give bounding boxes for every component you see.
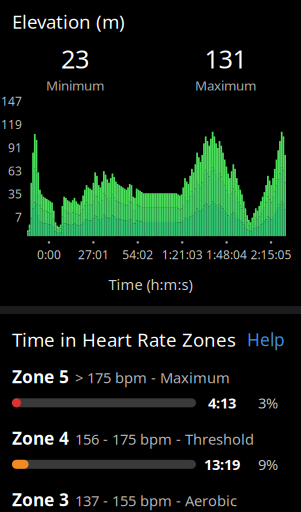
staticText: 27:01 xyxy=(78,247,109,262)
staticText: 156 - 175 bpm - Threshold xyxy=(75,429,254,449)
staticText: Zone 5 xyxy=(12,365,69,388)
staticText: 2:15:05 xyxy=(250,247,291,262)
staticText: 54:02 xyxy=(122,247,153,262)
staticText: 63 xyxy=(8,163,22,179)
staticText: Zone 4 xyxy=(12,427,69,450)
staticText: 13:19 xyxy=(204,455,240,474)
button[interactable]: Help xyxy=(243,324,289,355)
staticText: 147 xyxy=(1,93,22,109)
staticText: 131 xyxy=(204,42,246,75)
staticText: 4:13 xyxy=(208,393,236,413)
staticText: 0:00 xyxy=(37,247,61,262)
staticText: Maximum xyxy=(195,76,256,94)
staticText: 119 xyxy=(1,116,22,132)
staticText: 9% xyxy=(258,455,278,474)
staticText: 23 xyxy=(61,42,89,75)
button[interactable]: Zone 4 xyxy=(0,427,301,474)
staticText: > 175 bpm - Maximum xyxy=(75,368,230,387)
staticText: 137 - 155 bpm - Aerobic xyxy=(75,491,237,510)
button[interactable]: Zone 5 xyxy=(0,365,301,413)
staticText: 7 xyxy=(15,209,22,225)
staticText: 35 xyxy=(8,186,22,202)
staticText: Zone 3 xyxy=(12,488,69,511)
staticText: Time in Heart Rate Zones xyxy=(12,327,236,352)
staticText: Elevation (m) xyxy=(12,9,125,34)
staticText: 3% xyxy=(258,393,278,413)
staticText: Time (h:m:s) xyxy=(108,275,192,294)
button[interactable]: Zone 3 xyxy=(0,488,301,512)
staticText: 1:48:04 xyxy=(206,247,247,262)
staticText: Minimum xyxy=(46,76,104,94)
staticText: Help xyxy=(247,328,285,351)
staticText: 91 xyxy=(8,140,22,155)
staticText: 1:21:03 xyxy=(162,247,203,262)
